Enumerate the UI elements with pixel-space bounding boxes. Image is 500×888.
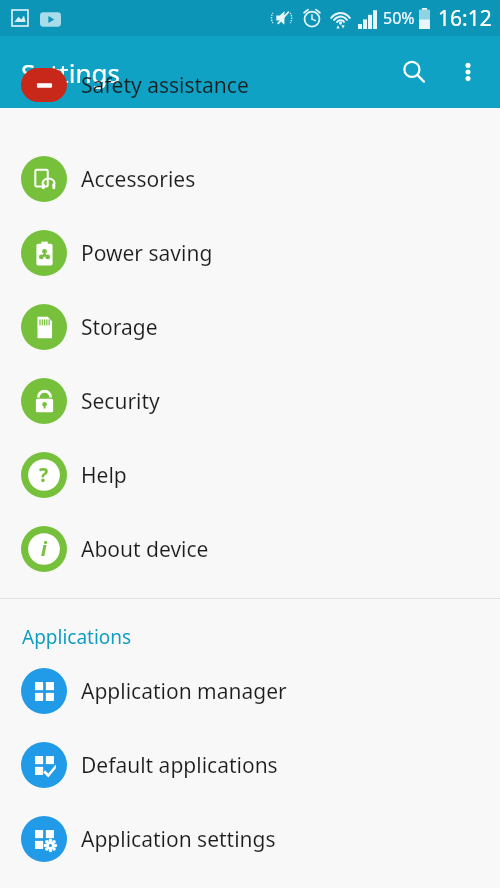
staticText: Settings [21,55,120,90]
staticText: Help [81,461,127,490]
staticText: Application settings [81,825,276,854]
staticText: Applications [22,624,132,650]
staticText: Security [81,387,160,416]
button[interactable]: ? [0,438,500,512]
button[interactable]: More options [442,46,494,98]
staticText: Default applications [81,751,278,780]
button[interactable]: Security [0,364,500,438]
staticText: About device [81,535,209,564]
staticText: Application manager [81,677,287,706]
staticText: 50% [383,7,415,29]
button[interactable]: Default applications [0,728,500,802]
button[interactable]: i [0,512,500,586]
button[interactable]: Power saving [0,216,500,290]
button[interactable]: Storage [0,290,500,364]
staticText: Power saving [81,239,213,268]
staticText: Storage [81,313,158,342]
staticText: 16:12 [438,4,492,33]
staticText: ? [39,462,49,488]
button[interactable]: Accessories [0,142,500,216]
staticText: Safety assistance [81,71,249,100]
button[interactable]: Search [386,44,442,100]
staticText: Accessories [81,165,196,194]
button[interactable]: Application manager [0,654,500,728]
button[interactable]: Application settings [0,802,500,876]
staticText: i [41,536,47,562]
